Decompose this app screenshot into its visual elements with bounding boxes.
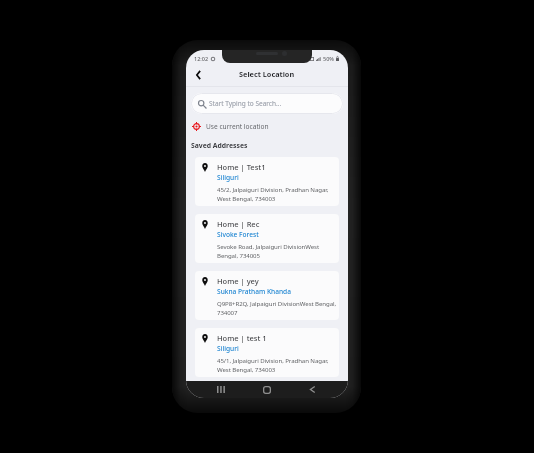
staticText: Home | yey (217, 276, 259, 286)
staticText: 45/1, Jalpaiguri Division, Pradhan Nagar… (217, 356, 329, 374)
staticText: 45/2, Jalpaiguri Division, Pradhan Nagar… (217, 185, 329, 203)
button[interactable]: Back (302, 381, 322, 398)
button[interactable]: Use current location (186, 120, 348, 132)
staticText: Siliguri (217, 173, 239, 182)
button[interactable]: Home | test 1 (195, 328, 339, 377)
button[interactable]: Back (189, 65, 207, 85)
button[interactable]: Start Typing to Search... (191, 93, 343, 114)
button[interactable]: Home | yey (195, 271, 339, 320)
staticText: Sivoke Forest (217, 230, 259, 239)
staticText: Start Typing to Search... (209, 99, 282, 108)
staticText: Home | test 1 (217, 333, 267, 343)
staticText: Home | Test1 (217, 162, 266, 172)
button[interactable]: Home | Test1 (195, 157, 339, 206)
staticText: Q9P8+R2Q, Jalpaiguri DivisionWest Bengal… (217, 299, 337, 317)
button[interactable]: Home (257, 381, 277, 398)
staticText: Select Location (239, 69, 295, 79)
staticText: Sevoke Road, Jalpaiguri DivisionWest Ben… (217, 242, 320, 260)
button[interactable]: Home | Rec (195, 214, 339, 263)
staticText: Siliguri (217, 344, 239, 353)
staticText: Home | Rec (217, 219, 260, 229)
button[interactable]: Recent apps (211, 381, 231, 398)
staticText: 50% (323, 55, 334, 62)
staticText: 12:02 (194, 55, 209, 62)
staticText: Saved Addresses (191, 141, 248, 150)
staticText: Use current location (206, 122, 269, 131)
staticText: Sukna Pratham Khanda (217, 287, 291, 296)
